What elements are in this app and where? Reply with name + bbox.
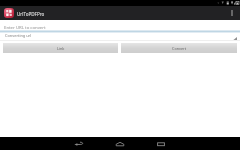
staticText: Link — [57, 46, 65, 51]
button[interactable]: Enter URL to convert — [0, 20, 240, 33]
staticText: Convert — [172, 46, 187, 51]
button[interactable]: Home — [115, 137, 125, 150]
staticText: Enter URL to convert — [4, 24, 46, 30]
button[interactable]: Back — [74, 137, 84, 150]
button[interactable]: Link — [3, 43, 118, 53]
staticText: UrlToPDFPro — [17, 11, 45, 17]
button[interactable]: Recent apps — [156, 137, 166, 150]
button[interactable]: Convert — [121, 43, 237, 53]
staticText: Converting url — [5, 33, 32, 38]
button[interactable]: Converting url — [0, 33, 240, 42]
button[interactable]: More options — [225, 6, 239, 20]
